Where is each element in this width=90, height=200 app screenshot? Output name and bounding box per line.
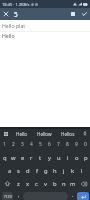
- staticText: 7: [57, 141, 60, 148]
- button[interactable]: Enter: [77, 192, 89, 200]
- staticText: v: [44, 180, 47, 188]
- staticText: y: [48, 154, 51, 162]
- button[interactable]: Backspace: [77, 177, 90, 190]
- button[interactable]: Hellow: [33, 129, 56, 138]
- staticText: 2: [12, 141, 15, 148]
- staticText: 0: [84, 141, 87, 148]
- staticText: c: [35, 180, 38, 188]
- button[interactable]: r: [27, 151, 36, 164]
- staticText: j: [63, 167, 65, 175]
- button[interactable]: t: [36, 151, 45, 164]
- button[interactable]: w: [9, 151, 18, 164]
- staticText: w: [11, 154, 16, 162]
- staticText: b: [53, 180, 57, 188]
- button[interactable]: a: [5, 164, 14, 177]
- button[interactable]: x: [23, 177, 32, 190]
- staticText: 9: [75, 141, 78, 148]
- button[interactable]: z: [14, 177, 23, 190]
- button[interactable]: f: [32, 164, 41, 177]
- staticText: l: [81, 167, 83, 175]
- staticText: a: [8, 167, 12, 175]
- button[interactable]: 1: [0, 138, 9, 151]
- staticText: g: [44, 167, 48, 175]
- staticText: ?123: [4, 194, 12, 199]
- button[interactable]: ,: [14, 190, 23, 200]
- staticText: r: [30, 154, 33, 162]
- button[interactable]: s: [14, 164, 23, 177]
- button[interactable]: 3: [18, 138, 27, 151]
- button[interactable]: m: [68, 177, 77, 190]
- button[interactable]: 6: [45, 138, 54, 151]
- button[interactable]: 4: [27, 138, 36, 151]
- staticText: t: [39, 154, 42, 162]
- staticText: 5: [39, 141, 42, 148]
- staticText: Hellos: [61, 131, 75, 137]
- staticText: 3: [21, 141, 24, 148]
- button[interactable]: n: [59, 177, 68, 190]
- button[interactable]: 9: [72, 138, 81, 151]
- button[interactable]: c: [32, 177, 41, 190]
- staticText: 4: [30, 141, 33, 148]
- staticText: 8: [66, 141, 69, 148]
- staticText: .: [72, 191, 74, 199]
- staticText: s: [17, 167, 20, 175]
- staticText: Hellow: [37, 131, 52, 137]
- staticText: u: [57, 154, 61, 162]
- staticText: n: [62, 180, 66, 188]
- button[interactable]: k: [68, 164, 77, 177]
- button[interactable]: l: [77, 164, 86, 177]
- button[interactable]: u: [54, 151, 63, 164]
- button[interactable]: i: [63, 151, 72, 164]
- button[interactable]: b: [50, 177, 59, 190]
- staticText: f: [36, 167, 38, 175]
- staticText: 1: [3, 141, 6, 148]
- staticText: q: [3, 154, 7, 162]
- button[interactable]: o: [72, 151, 81, 164]
- button[interactable]: .: [68, 190, 77, 200]
- button[interactable]: v: [41, 177, 50, 190]
- staticText: o: [75, 154, 79, 162]
- button[interactable]: Hellos: [56, 129, 79, 138]
- staticText: d: [26, 167, 30, 175]
- staticText: x: [26, 180, 30, 188]
- button[interactable]: Voice input: [79, 129, 90, 138]
- staticText: Hello plat: [2, 22, 26, 29]
- staticText: Hello: [2, 32, 15, 39]
- button[interactable]: 5: [11, 8, 21, 20]
- staticText: ,: [18, 191, 20, 199]
- staticText: m: [70, 180, 76, 188]
- button[interactable]: Close: [0, 8, 11, 20]
- staticText: h: [53, 167, 57, 175]
- button[interactable]: Done: [78, 8, 90, 20]
- button[interactable]: 7: [54, 138, 63, 151]
- button[interactable]: Hello: [11, 129, 33, 138]
- button[interactable]: h: [50, 164, 59, 177]
- staticText: e: [21, 154, 25, 162]
- button[interactable]: 8: [63, 138, 72, 151]
- button[interactable]: g: [41, 164, 50, 177]
- button[interactable]: 2: [9, 138, 18, 151]
- staticText: k: [71, 167, 75, 175]
- button[interactable]: 0: [81, 138, 90, 151]
- staticText: z: [17, 180, 20, 188]
- button[interactable]: Keyboard menu: [0, 129, 11, 138]
- staticText: 6: [48, 141, 51, 148]
- button[interactable]: e: [18, 151, 27, 164]
- staticText: p: [84, 154, 88, 162]
- button[interactable]: ?123: [2, 192, 13, 200]
- button[interactable]: d: [23, 164, 32, 177]
- staticText: i: [67, 154, 69, 162]
- staticText: Hello: [16, 131, 28, 137]
- button[interactable]: j: [59, 164, 68, 177]
- staticText: 5: [14, 10, 18, 19]
- button[interactable]: q: [0, 151, 9, 164]
- button[interactable]: 5: [36, 138, 45, 151]
- button[interactable]: Label: [67, 8, 78, 20]
- button[interactable]: y: [45, 151, 54, 164]
- button[interactable]: Shift: [0, 177, 14, 190]
- staticText: 18:45 · 1.3KB/s: [2, 2, 30, 7]
- button[interactable]: p: [81, 151, 90, 164]
